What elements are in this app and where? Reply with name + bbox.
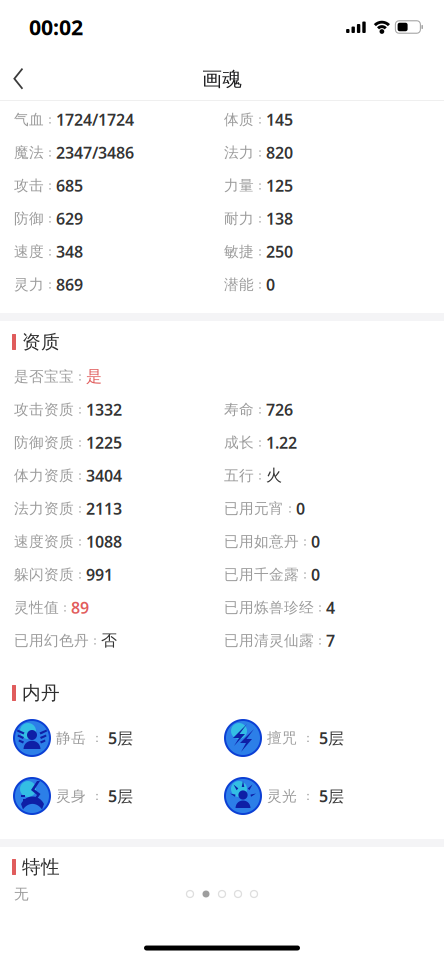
staticText: ： [74, 402, 86, 417]
button[interactable]: 返回 [0, 54, 36, 98]
staticText: ： [254, 112, 266, 127]
staticText: 1724/1724 [56, 109, 134, 130]
staticText: 820 [266, 142, 293, 163]
staticText: 攻击资质 [14, 400, 74, 418]
staticText: 擅咒 [267, 729, 297, 747]
staticText: 灵光 [267, 787, 297, 805]
staticText: 灵性值 [14, 598, 59, 616]
staticText: 速度资质 [14, 532, 74, 550]
staticText: ： [59, 600, 71, 615]
staticText: 125 [266, 175, 293, 196]
staticText: ： [74, 501, 86, 516]
staticText: 869 [56, 274, 83, 295]
staticText: 速度 [14, 242, 44, 260]
staticText: ： [44, 178, 56, 193]
staticText: 145 [266, 109, 293, 130]
staticText: 法力资质 [14, 499, 74, 517]
staticText: ： [254, 178, 266, 193]
staticText: 2113 [86, 498, 122, 519]
staticText: 是否宝宝 [14, 367, 74, 385]
staticText: 已用千金露 [224, 565, 299, 583]
staticText: 5层 [108, 727, 133, 749]
staticText: 2347/3486 [56, 142, 134, 163]
staticText: ： [254, 277, 266, 292]
staticText: ： [74, 534, 86, 549]
staticText: 五行 [224, 466, 254, 484]
staticText: ： [44, 277, 56, 292]
staticText: 防御 [14, 209, 44, 227]
staticText: 1.22 [266, 432, 297, 453]
staticText: ： [254, 435, 266, 450]
staticText: 7 [326, 630, 335, 651]
staticText: ： [44, 244, 56, 259]
staticText: ： [254, 211, 266, 226]
staticText: 89 [71, 597, 89, 618]
staticText: 726 [266, 399, 293, 420]
staticText: 已用元宵 [224, 499, 284, 517]
staticText: 138 [266, 208, 293, 229]
staticText: 防御资质 [14, 433, 74, 451]
staticText: ： [89, 633, 101, 648]
staticText: ： [302, 731, 314, 745]
staticText: 已用清灵仙露 [224, 631, 314, 649]
staticText: 991 [86, 564, 113, 585]
staticText: ： [299, 534, 311, 549]
staticText: ： [74, 468, 86, 483]
staticText: 寿命 [224, 400, 254, 418]
staticText: 5层 [319, 785, 344, 807]
staticText: 攻击 [14, 176, 44, 194]
staticText: 体力资质 [14, 466, 74, 484]
staticText: 静岳 [56, 729, 86, 747]
staticText: ： [91, 731, 103, 745]
staticText: ： [44, 112, 56, 127]
staticText: 力量 [224, 176, 254, 194]
staticText: ： [314, 633, 326, 648]
staticText: 1225 [86, 432, 122, 453]
staticText: ： [44, 145, 56, 160]
staticText: 348 [56, 241, 83, 262]
staticText: 5层 [319, 727, 344, 749]
staticText: 已用如意丹 [224, 532, 299, 550]
staticText: 0 [296, 498, 305, 519]
staticText: 灵身 [56, 787, 86, 805]
staticText: 火 [266, 466, 282, 485]
staticText: 资质 [22, 330, 60, 353]
staticText: 法力 [224, 143, 254, 161]
staticText: ： [74, 567, 86, 582]
staticText: 已用炼兽珍经 [224, 598, 314, 616]
staticText: 00:02 [29, 13, 83, 41]
staticText: 4 [326, 597, 335, 618]
staticText: ： [44, 211, 56, 226]
staticText: 250 [266, 241, 293, 262]
staticText: ： [74, 369, 86, 384]
staticText: 0 [266, 274, 275, 295]
staticText: ： [254, 244, 266, 259]
staticText: ： [299, 567, 311, 582]
staticText: 629 [56, 208, 83, 229]
staticText: 魔法 [14, 143, 44, 161]
staticText: ： [314, 600, 326, 615]
staticText: 3404 [86, 465, 122, 486]
staticText: ： [254, 145, 266, 160]
staticText: 0 [311, 531, 320, 552]
staticText: ： [284, 501, 296, 516]
staticText: 灵力 [14, 275, 44, 293]
staticText: ： [91, 789, 103, 803]
staticText: 画魂 [202, 67, 242, 91]
staticText: 0 [311, 564, 320, 585]
staticText: 成长 [224, 433, 254, 451]
staticText: ： [302, 789, 314, 803]
staticText: 已用幻色丹 [14, 631, 89, 649]
staticText: 685 [56, 175, 83, 196]
staticText: ： [254, 402, 266, 417]
staticText: 特性 [22, 855, 60, 878]
staticText: 内丹 [22, 681, 60, 704]
staticText: 潜能 [224, 275, 254, 293]
staticText: ： [74, 435, 86, 450]
staticText: 体质 [224, 110, 254, 128]
staticText: 1088 [86, 531, 122, 552]
staticText: 躲闪资质 [14, 565, 74, 583]
staticText: ： [254, 468, 266, 483]
staticText: 否 [101, 631, 117, 650]
staticText: 是 [86, 367, 102, 386]
